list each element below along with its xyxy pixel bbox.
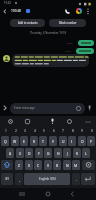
staticText: 9 <box>81 129 83 133</box>
button[interactable]: N <box>63 160 71 170</box>
button[interactable] <box>3 105 7 111</box>
button[interactable]: X <box>25 160 33 170</box>
button[interactable]: U <box>59 136 67 146</box>
staticText: 8 <box>72 129 74 133</box>
button[interactable] <box>8 119 13 124</box>
staticText: 7 <box>62 129 64 133</box>
staticText: W <box>13 139 17 144</box>
button[interactable] <box>67 119 72 124</box>
staticText: Block number <box>59 21 77 25</box>
staticText: D <box>28 151 31 156</box>
button[interactable] <box>70 191 75 197</box>
button[interactable] <box>85 120 91 124</box>
button[interactable] <box>86 8 90 15</box>
button[interactable]: V <box>44 160 52 170</box>
button[interactable]: F <box>35 148 43 158</box>
button[interactable]: Enter message <box>10 103 85 114</box>
button[interactable]: M <box>72 160 80 170</box>
staticText: H <box>57 151 60 156</box>
staticText: P <box>90 139 93 144</box>
button[interactable]: English (US) <box>24 173 70 185</box>
staticText: E <box>23 139 25 144</box>
button[interactable]: Y <box>49 136 57 146</box>
button[interactable] <box>45 191 51 197</box>
button[interactable]: 8 <box>68 127 77 134</box>
button[interactable]: P <box>87 136 95 146</box>
staticText: C <box>37 163 40 168</box>
button[interactable]: B <box>53 160 61 170</box>
button[interactable]: L <box>82 148 90 158</box>
button[interactable] <box>76 48 94 54</box>
staticText: . <box>76 177 77 182</box>
button[interactable]: !#1 <box>1 173 13 185</box>
button[interactable] <box>87 105 92 111</box>
button[interactable]: 4 <box>30 127 39 134</box>
staticText: B <box>56 163 59 168</box>
staticText: 19:19 <box>65 50 71 53</box>
button[interactable]: T <box>39 136 47 146</box>
button[interactable]: 1 <box>1 127 10 134</box>
button[interactable]: D <box>25 148 33 158</box>
button[interactable] <box>1 160 13 170</box>
button[interactable]: H <box>54 148 62 158</box>
button[interactable] <box>25 119 30 124</box>
button[interactable]: E <box>20 136 28 146</box>
button[interactable]: I <box>68 136 76 146</box>
button[interactable]: Q <box>1 136 9 146</box>
staticText: T <box>42 139 44 144</box>
button[interactable] <box>65 9 70 14</box>
button[interactable]: 5 <box>39 127 48 134</box>
staticText: Z <box>18 163 20 168</box>
staticText: F <box>38 151 40 156</box>
staticText: J <box>67 151 68 156</box>
button[interactable]: W <box>11 136 19 146</box>
staticText: X <box>28 163 30 168</box>
staticText: Thursday, 6 November 19:18 <box>30 31 67 35</box>
button[interactable] <box>78 40 94 46</box>
button[interactable]: 6 <box>49 127 58 134</box>
staticText: R <box>33 139 36 144</box>
staticText: 19:20 <box>4 1 11 5</box>
staticText: 0 <box>91 129 93 133</box>
staticText: 4 <box>34 129 36 133</box>
button[interactable]: O <box>78 136 86 146</box>
button[interactable] <box>81 173 95 185</box>
staticText: !#1 <box>5 177 9 181</box>
button[interactable]: 3 <box>20 127 29 134</box>
button[interactable]: G <box>44 148 52 158</box>
staticText: 3 <box>24 129 26 133</box>
staticText: 19:19 <box>67 42 73 45</box>
staticText: V <box>47 163 50 168</box>
staticText: N <box>66 163 69 168</box>
button[interactable]: J <box>63 148 71 158</box>
button[interactable]: Z <box>15 160 23 170</box>
button[interactable]: C <box>34 160 42 170</box>
button[interactable] <box>12 54 89 67</box>
button[interactable]: S <box>16 148 24 158</box>
button[interactable]: R <box>30 136 38 146</box>
staticText: G <box>47 151 50 156</box>
button[interactable]: 2 <box>11 127 20 134</box>
staticText: O <box>81 139 84 144</box>
staticText: 5 <box>43 129 45 133</box>
button[interactable]: 9 <box>77 127 86 134</box>
staticText: L <box>85 151 87 156</box>
button[interactable] <box>82 160 95 170</box>
staticText: 1 <box>5 129 7 133</box>
button[interactable] <box>3 9 7 14</box>
button[interactable]: K <box>73 148 81 158</box>
button[interactable]: Block number <box>49 19 86 27</box>
staticText: 190 48 <box>11 9 21 13</box>
button[interactable]: , <box>15 173 23 185</box>
button[interactable] <box>19 191 25 197</box>
button[interactable]: A <box>6 148 14 158</box>
staticText: , <box>19 177 20 182</box>
button[interactable]: . <box>72 173 80 185</box>
button[interactable]: 7 <box>58 127 67 134</box>
button[interactable]: 0 <box>87 127 96 134</box>
button[interactable] <box>76 8 82 14</box>
staticText: M <box>74 163 78 168</box>
button[interactable] <box>50 118 55 125</box>
staticText: 6 <box>53 129 55 133</box>
button[interactable]: Add to contacts <box>10 19 45 27</box>
